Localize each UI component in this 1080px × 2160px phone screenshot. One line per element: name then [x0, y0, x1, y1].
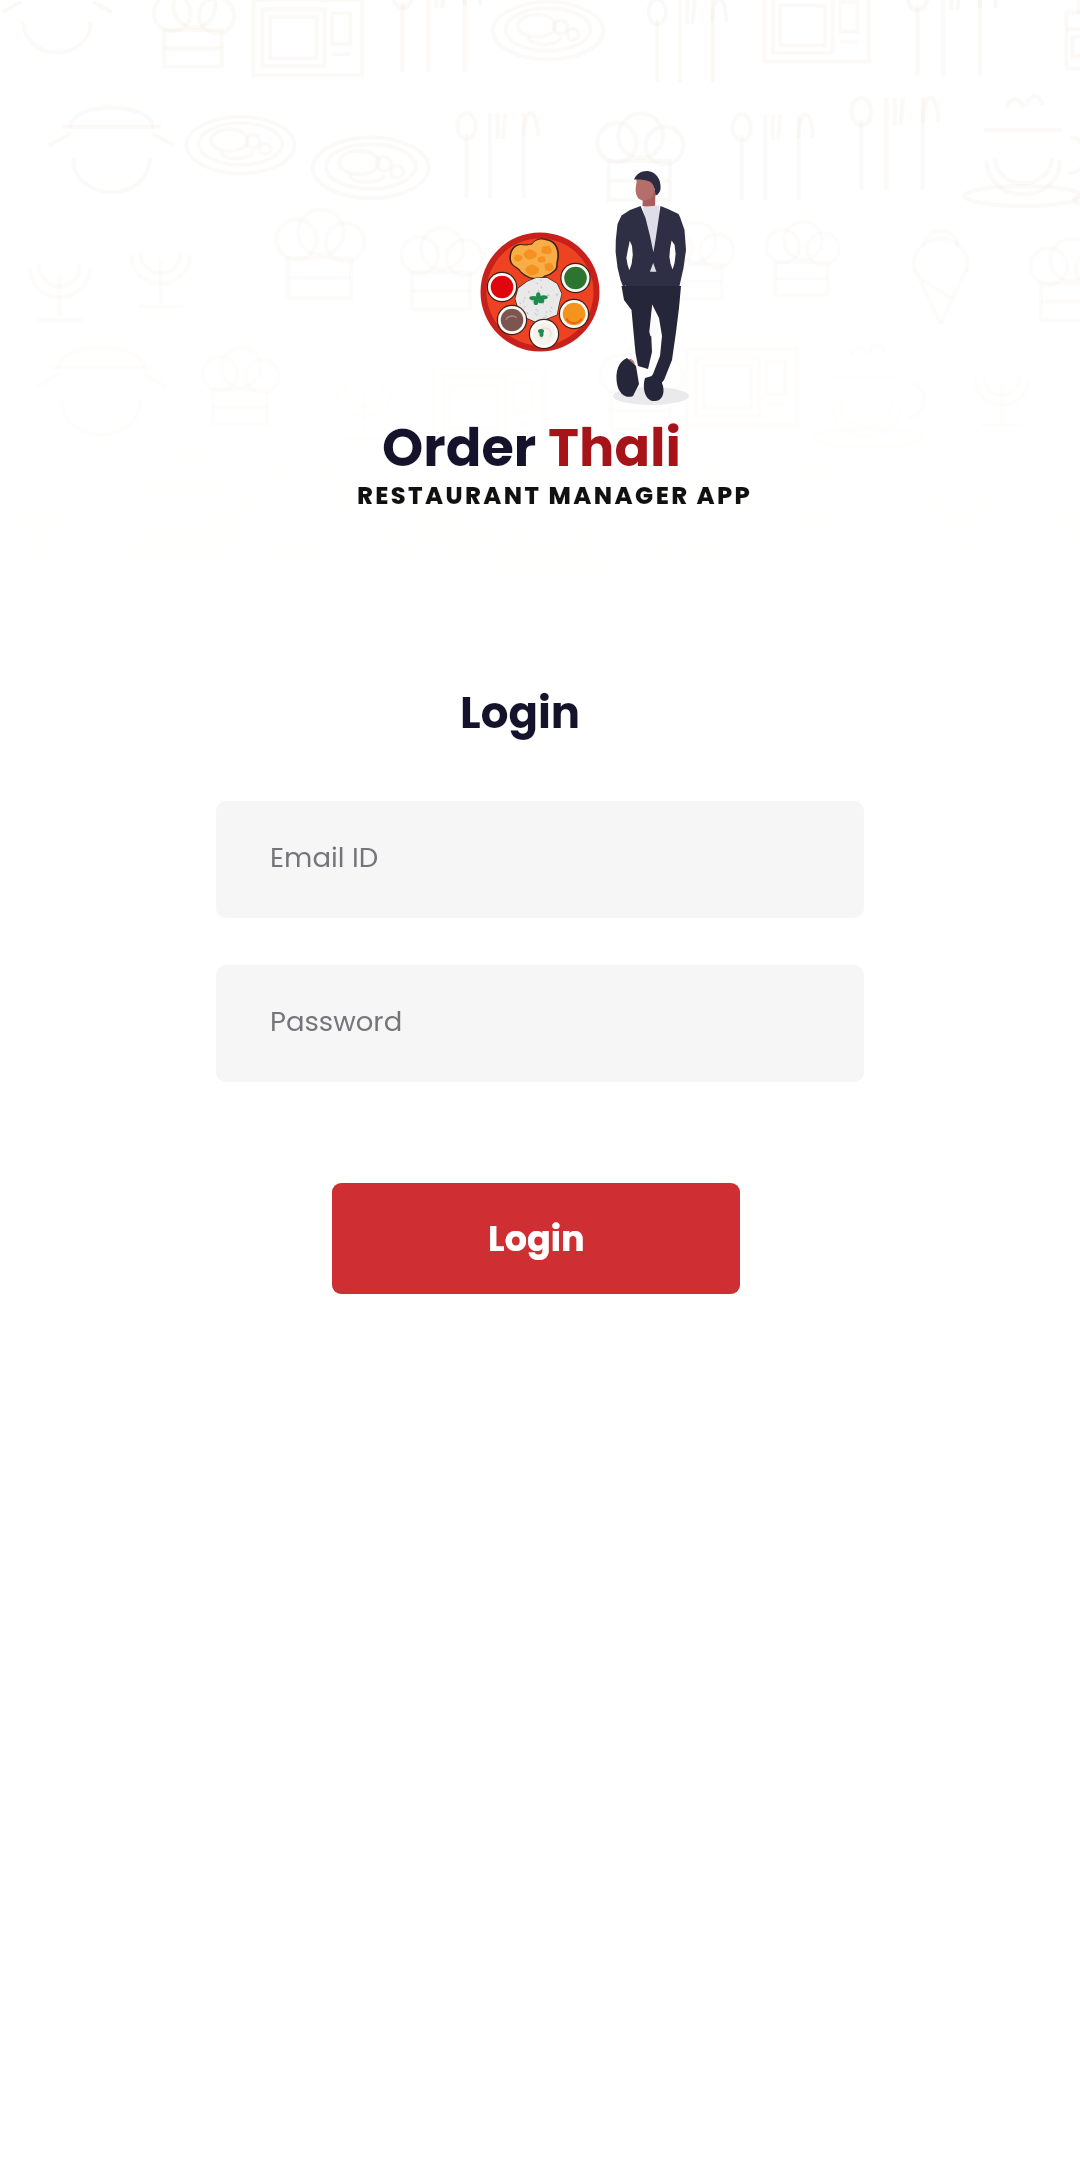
- staticText: Thali: [548, 411, 682, 484]
- staticText: Login: [488, 1214, 585, 1263]
- staticText: Login: [460, 682, 581, 743]
- button[interactable]: Email ID: [216, 801, 864, 918]
- staticText: Email ID: [270, 838, 379, 876]
- other: Order Thali logo: [0, 155, 1080, 415]
- staticText: Order: [382, 411, 548, 484]
- staticText: RESTAURANT MANAGER APP: [357, 479, 753, 513]
- button[interactable]: Password: [216, 965, 864, 1082]
- staticText: Password: [270, 1002, 403, 1040]
- button[interactable]: Login: [332, 1183, 740, 1294]
